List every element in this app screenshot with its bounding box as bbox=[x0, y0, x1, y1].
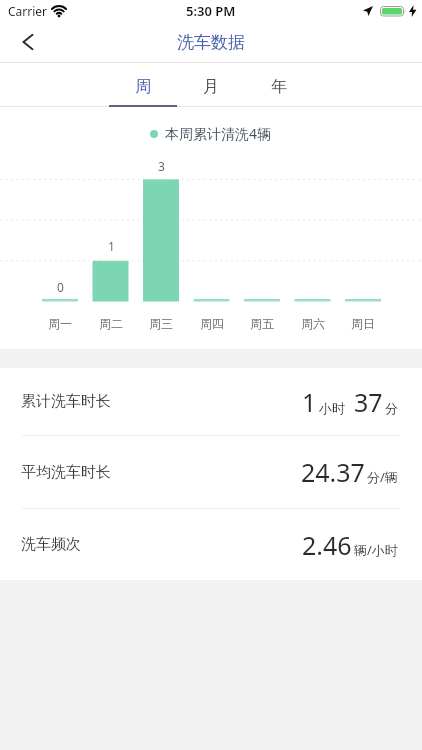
staticText: 平均洗车时长 bbox=[21, 463, 111, 482]
staticText: 周三 bbox=[149, 316, 173, 331]
button[interactable]: 平均洗车时长 bbox=[0, 436, 422, 508]
staticText: 2.46 bbox=[302, 528, 352, 562]
staticText: 年 bbox=[271, 77, 287, 97]
staticText: 0 bbox=[57, 279, 64, 295]
staticText: 分 bbox=[385, 400, 398, 416]
button[interactable] bbox=[12, 26, 44, 58]
staticText: 辆/小时 bbox=[354, 541, 398, 559]
staticText: 1 bbox=[302, 385, 317, 419]
staticText: 累计洗车时长 bbox=[21, 392, 111, 411]
staticText: 周二 bbox=[99, 316, 123, 331]
staticText: 周五 bbox=[250, 316, 274, 331]
staticText: 洗车频次 bbox=[21, 535, 81, 554]
staticText: Carrier bbox=[8, 3, 48, 19]
staticText: 分/辆 bbox=[367, 468, 398, 486]
staticText: 本周累计清洗4辆 bbox=[165, 124, 272, 143]
staticText: 洗车数据 bbox=[177, 32, 245, 53]
staticText: 周六 bbox=[301, 316, 325, 331]
button[interactable]: 年 bbox=[245, 63, 313, 107]
staticText: 3 bbox=[158, 158, 165, 174]
button[interactable]: 月 bbox=[177, 63, 245, 107]
staticText: 1 bbox=[108, 238, 115, 254]
staticText: 周 bbox=[135, 77, 151, 97]
staticText: 周四 bbox=[200, 316, 224, 331]
staticText: 24.37 bbox=[301, 455, 365, 489]
staticText: 小时 bbox=[319, 400, 345, 416]
button[interactable]: 累计洗车时长 bbox=[0, 368, 422, 435]
staticText: 月 bbox=[203, 77, 219, 97]
staticText: 周日 bbox=[351, 316, 375, 331]
staticText: 5:30 PM bbox=[186, 2, 236, 20]
button[interactable]: 洗车频次 bbox=[0, 509, 422, 580]
staticText: 周一 bbox=[48, 316, 72, 331]
staticText: 37 bbox=[354, 385, 383, 419]
button[interactable]: 周 bbox=[109, 63, 177, 107]
